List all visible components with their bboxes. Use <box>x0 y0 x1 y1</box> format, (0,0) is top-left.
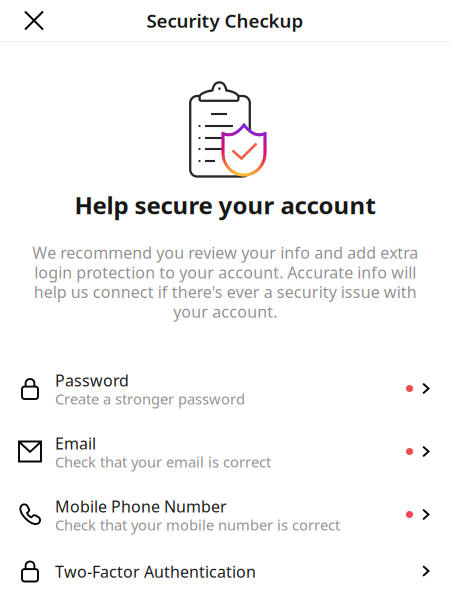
staticText: Password <box>55 370 129 391</box>
staticText: Security Checkup <box>146 8 303 33</box>
button[interactable]: Mobile Phone Number <box>0 483 450 546</box>
button[interactable]: Two-Factor Authentication <box>0 546 450 589</box>
staticText: Create a stronger password <box>55 389 245 408</box>
staticText: Check that your mobile number is correct <box>55 515 340 534</box>
staticText: Help secure your account <box>74 189 375 221</box>
button[interactable]: Password <box>0 357 450 420</box>
button[interactable]: Email <box>0 420 450 483</box>
staticText: Check that your email is correct <box>55 452 271 471</box>
staticText: Two-Factor Authentication <box>55 561 256 582</box>
staticText: Email <box>55 433 96 454</box>
button[interactable]: Close <box>10 0 58 41</box>
staticText: We recommend you review your info and ad… <box>32 242 418 322</box>
staticText: Mobile Phone Number <box>55 496 227 517</box>
